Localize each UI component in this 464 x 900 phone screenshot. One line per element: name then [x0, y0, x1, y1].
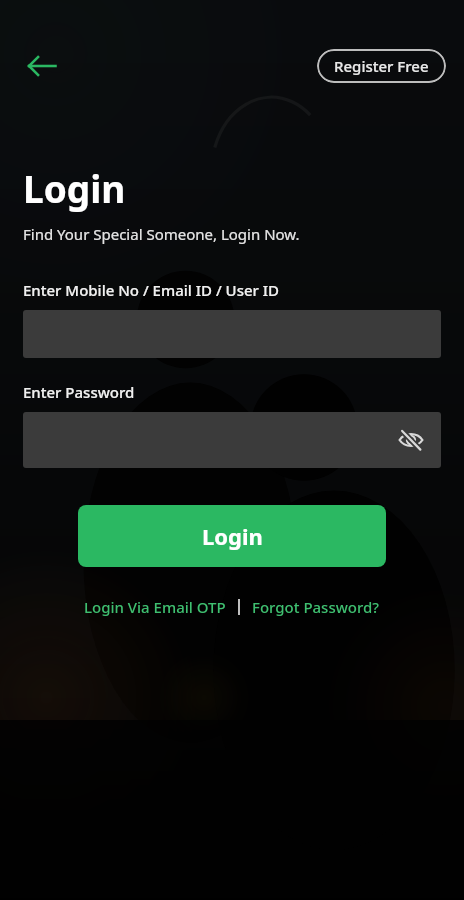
- staticText: Login Via Email OTP: [84, 597, 226, 617]
- button[interactable]: Show password: [389, 418, 433, 462]
- button[interactable]: Enter Password: [23, 412, 441, 468]
- button[interactable]: Forgot Password?: [248, 593, 384, 621]
- button[interactable]: Back: [18, 42, 66, 90]
- staticText: Login: [202, 521, 263, 551]
- staticText: Login: [23, 163, 126, 213]
- staticText: Forgot Password?: [252, 597, 380, 617]
- button[interactable]: Login Via Email OTP: [80, 593, 230, 621]
- button[interactable]: Register Free: [317, 49, 446, 83]
- staticText: Register Free: [334, 56, 429, 76]
- staticText: Enter Mobile No / Email ID / User ID: [23, 280, 280, 300]
- button[interactable]: Login: [78, 505, 386, 567]
- staticText: Enter Password: [23, 382, 135, 402]
- staticText: Find Your Special Someone, Login Now.: [23, 224, 300, 244]
